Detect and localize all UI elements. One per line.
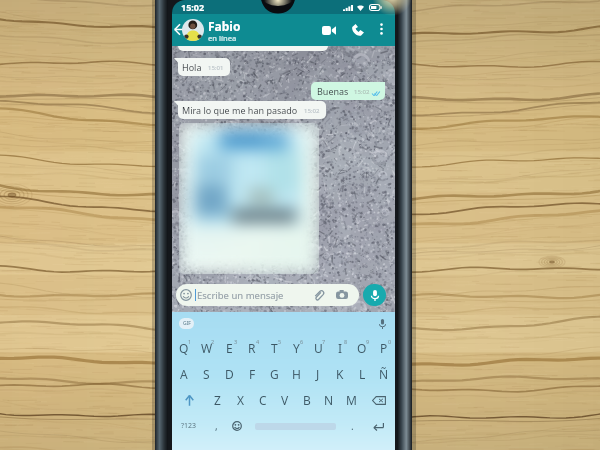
other: Voice input [379, 319, 386, 329]
button[interactable]: Escribe un mensaje [176, 284, 359, 306]
staticText: Ñ [379, 366, 389, 382]
button[interactable]: P [373, 335, 395, 361]
staticText: en línea [208, 33, 237, 43]
staticText: Fabio [208, 18, 241, 34]
button[interactable]: Hola [178, 58, 230, 76]
button[interactable]: O [351, 335, 373, 361]
button[interactable]: ?123 [172, 413, 206, 439]
button[interactable]: K [329, 361, 351, 387]
staticText: Buenas [317, 85, 349, 97]
staticText: Z [214, 392, 221, 408]
staticText: 7 [322, 338, 326, 345]
staticText: R [248, 340, 256, 356]
button[interactable]: Y [285, 335, 307, 361]
button[interactable]: Mira lo que me han pasado [178, 101, 326, 119]
staticText: T [271, 340, 278, 356]
staticText: O [357, 340, 367, 356]
button[interactable]: Backspace [362, 387, 395, 413]
button[interactable]: U [307, 335, 329, 361]
staticText: P [380, 340, 388, 356]
button[interactable]: V [274, 387, 296, 413]
button[interactable]: Emoji [226, 413, 248, 439]
button[interactable]: Back [172, 19, 191, 40]
staticText: A [180, 366, 188, 382]
staticText: ?123 [181, 421, 197, 431]
staticText: W [201, 340, 213, 356]
staticText: X [237, 392, 245, 408]
staticText: G [270, 366, 279, 382]
button[interactable]: More options [373, 20, 390, 37]
staticText: V [281, 392, 289, 408]
button[interactable]: S [195, 361, 218, 387]
staticText: N [324, 392, 334, 408]
button[interactable]: Q [172, 335, 195, 361]
button[interactable]: Voice message [363, 284, 386, 306]
staticText: 9 [366, 338, 370, 345]
staticText: Hola [182, 61, 202, 73]
button[interactable]: Buenas [311, 82, 385, 100]
staticText: 15:01 [208, 64, 224, 72]
staticText: 15:02 [181, 1, 205, 13]
staticText: 8 [344, 338, 348, 345]
button[interactable]: C [252, 387, 274, 413]
staticText: M [346, 392, 357, 408]
staticText: 3 [234, 338, 238, 345]
button[interactable]: Z [206, 387, 229, 413]
staticText: U [314, 340, 323, 356]
button[interactable]: Profile photo [182, 19, 204, 41]
button[interactable]: Shift [172, 387, 206, 413]
button[interactable]: Space [248, 413, 342, 439]
staticText: 6 [300, 338, 304, 345]
button[interactable]: N [318, 387, 340, 413]
staticText: K [336, 366, 344, 382]
staticText: E [226, 340, 233, 356]
staticText: 2 [211, 338, 215, 345]
staticText: , [215, 419, 218, 433]
button[interactable]: . [342, 413, 362, 439]
staticText: I [338, 340, 343, 356]
staticText: F [249, 366, 256, 382]
button[interactable]: R [241, 335, 263, 361]
button[interactable]: L [351, 361, 373, 387]
button[interactable]: G [263, 361, 285, 387]
button[interactable]: E [218, 335, 241, 361]
staticText: 5 [278, 338, 282, 345]
button[interactable]: A [172, 361, 195, 387]
button[interactable]: I [329, 335, 351, 361]
button[interactable]: GIF [179, 318, 194, 329]
button[interactable]: Enter [362, 413, 395, 439]
button[interactable]: J [307, 361, 329, 387]
staticText: D [225, 366, 234, 382]
other: Camera [336, 290, 348, 300]
staticText: J [316, 366, 320, 382]
staticText: C [259, 392, 267, 408]
button[interactable]: H [285, 361, 307, 387]
staticText: 15:02 [354, 88, 370, 96]
button[interactable] [179, 123, 319, 274]
staticText: Mira lo que me han pasado [182, 104, 298, 116]
button[interactable]: Video call [319, 20, 339, 40]
staticText: L [359, 366, 366, 382]
button[interactable]: , [206, 413, 226, 439]
button[interactable]: B [296, 387, 318, 413]
other: Attach [313, 290, 324, 301]
button[interactable]: F [241, 361, 263, 387]
staticText: GIF [183, 320, 191, 327]
staticText: S [203, 366, 210, 382]
staticText: Y [293, 340, 300, 356]
staticText: 1 [188, 338, 192, 345]
staticText: Escribe un mensaje [197, 289, 284, 302]
button[interactable]: D [218, 361, 241, 387]
staticText: 0 [388, 338, 392, 345]
button[interactable]: W [195, 335, 218, 361]
button[interactable]: Call [348, 20, 368, 40]
button[interactable]: Ñ [373, 361, 395, 387]
staticText: 15:02 [304, 107, 320, 115]
staticText: Q [179, 340, 189, 356]
button[interactable]: M [340, 387, 362, 413]
staticText: . [351, 419, 354, 433]
staticText: H [292, 366, 301, 382]
button[interactable]: X [229, 387, 252, 413]
staticText: 4 [256, 338, 260, 345]
button[interactable]: T [263, 335, 285, 361]
